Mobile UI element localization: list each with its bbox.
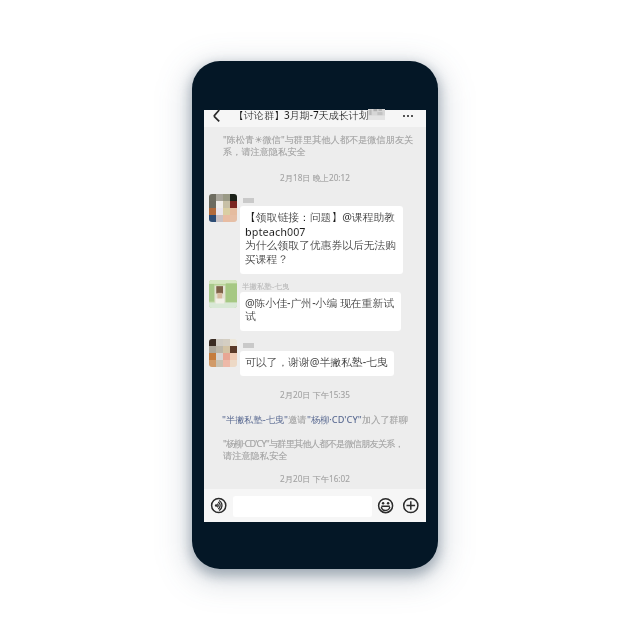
staticText: 邀请 — [288, 414, 307, 426]
staticText: 【讨论群】3月期-7天成长计划 — [234, 108, 369, 122]
button[interactable]: Back — [208, 110, 225, 127]
staticText: "陈松青☀微信"与群里其他人都不是微信朋友关系，请注意隐私安全 — [223, 133, 415, 158]
button[interactable]: Avatar — [209, 194, 237, 222]
button[interactable]: Emoji — [375, 495, 396, 516]
staticText: 【领取链接：问题】@课程助教 — [245, 209, 396, 224]
staticText: "杨柳·CD'CY" — [307, 413, 362, 426]
staticText: 为什么领取了优惠券以后无法购 — [245, 239, 397, 253]
button[interactable]: 可以了，谢谢@半撇私塾-七曳 — [240, 351, 394, 376]
staticText: 请注意隐私安全 — [223, 450, 288, 462]
staticText: "半撇私塾-七曳" — [222, 413, 288, 426]
button[interactable]: @陈小佳-广州-小编 现在重新试 — [240, 292, 401, 331]
staticText: @陈小佳-广州-小编 现在重新试 — [245, 295, 395, 310]
staticText: 2月20日 下午15:35 — [280, 389, 350, 400]
staticText: 试 — [245, 310, 256, 324]
button[interactable]: 【领取链接：问题】@课程助教 — [240, 206, 403, 274]
button[interactable]: Voice message — [208, 495, 229, 516]
staticText: bpteach007 — [245, 224, 306, 239]
staticText: 半撇私塾-七曳 — [242, 281, 290, 291]
staticText: "杨柳·CD'CY"与群里其他人都不是微信朋友关系， — [223, 437, 404, 450]
staticText: 可以了，谢谢@半撇私塾-七曳 — [245, 354, 388, 369]
button[interactable]: More options — [400, 110, 422, 127]
staticText: 买课程？ — [245, 253, 289, 267]
button[interactable]: Avatar — [209, 280, 237, 308]
staticText: 2月20日 下午16:02 — [280, 473, 350, 484]
staticText: 2月18日 晚上20:12 — [280, 172, 350, 183]
button[interactable]: Avatar — [209, 339, 237, 367]
staticText: 加入了群聊 — [362, 414, 408, 426]
button[interactable]: More — [400, 495, 421, 516]
